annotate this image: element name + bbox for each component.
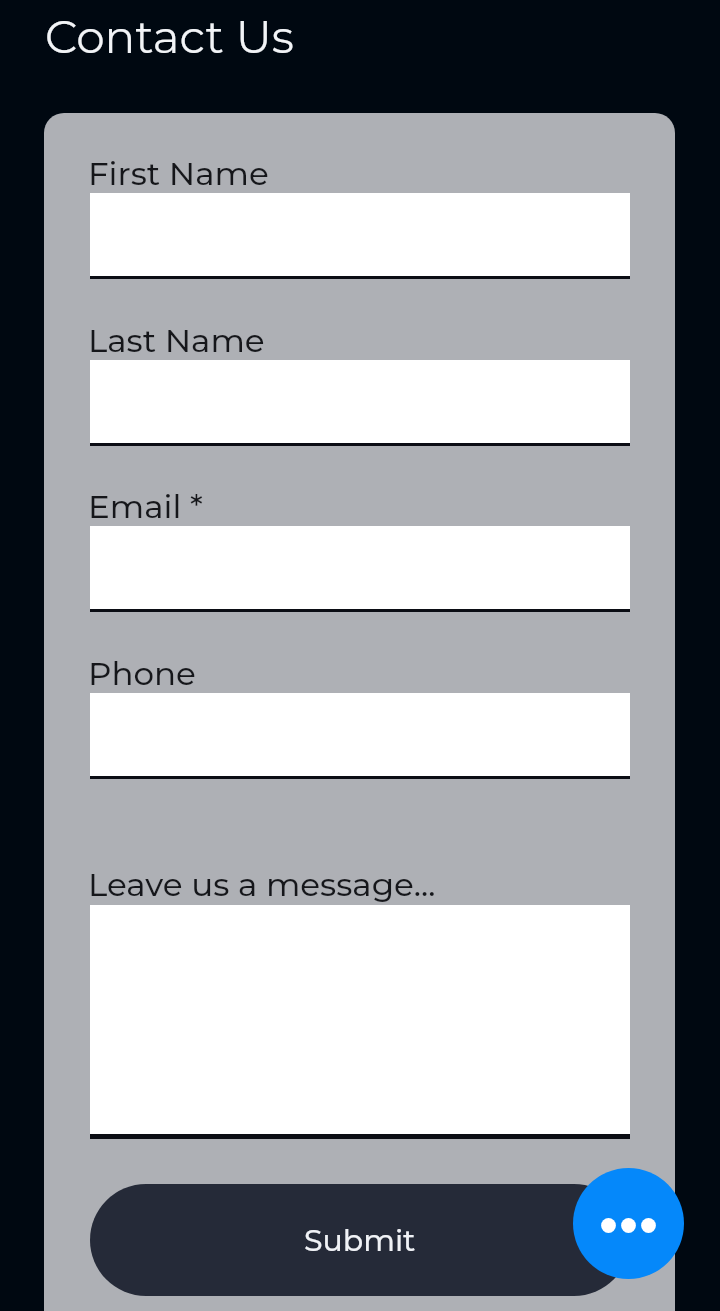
button[interactable]: More options (573, 1168, 684, 1279)
staticText: Last Name (88, 321, 265, 361)
staticText: Phone (88, 654, 196, 694)
staticText: Submit (304, 1222, 416, 1259)
button[interactable]: Last Name (90, 360, 630, 446)
staticText: Contact Us (45, 9, 294, 64)
button[interactable]: Email * (90, 526, 630, 612)
button[interactable]: Leave us a message (90, 905, 630, 1139)
staticText: Leave us a message... (88, 865, 436, 905)
staticText: First Name (88, 154, 269, 194)
staticText: Email * (88, 487, 203, 527)
button[interactable]: Phone (90, 693, 630, 779)
button[interactable]: Submit (90, 1184, 630, 1296)
button[interactable]: First Name (90, 193, 630, 279)
